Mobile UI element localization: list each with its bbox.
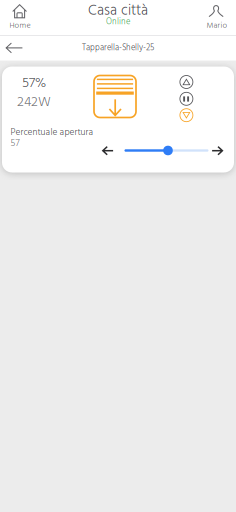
button[interactable]: Close shutter xyxy=(180,109,193,122)
staticText: Mario xyxy=(206,19,227,32)
staticText: Home xyxy=(9,19,30,32)
staticText: 57 xyxy=(10,136,19,151)
staticText: Tapparella-Shelly-25 xyxy=(82,41,154,55)
button[interactable]: Increase xyxy=(212,144,223,158)
staticText: Online xyxy=(106,15,130,29)
staticText: Casa città xyxy=(88,0,148,23)
button[interactable]: Home xyxy=(0,0,40,34)
staticText: 242W xyxy=(17,91,51,113)
staticText: Percentuale apertura xyxy=(10,125,93,140)
button[interactable]: Decrease xyxy=(102,144,114,158)
button[interactable]: Back xyxy=(2,41,26,55)
button[interactable]: Open shutter xyxy=(180,75,193,88)
button[interactable]: Stop shutter xyxy=(180,92,193,105)
staticText: 57% xyxy=(22,72,46,94)
button[interactable]: Mario xyxy=(196,0,236,34)
